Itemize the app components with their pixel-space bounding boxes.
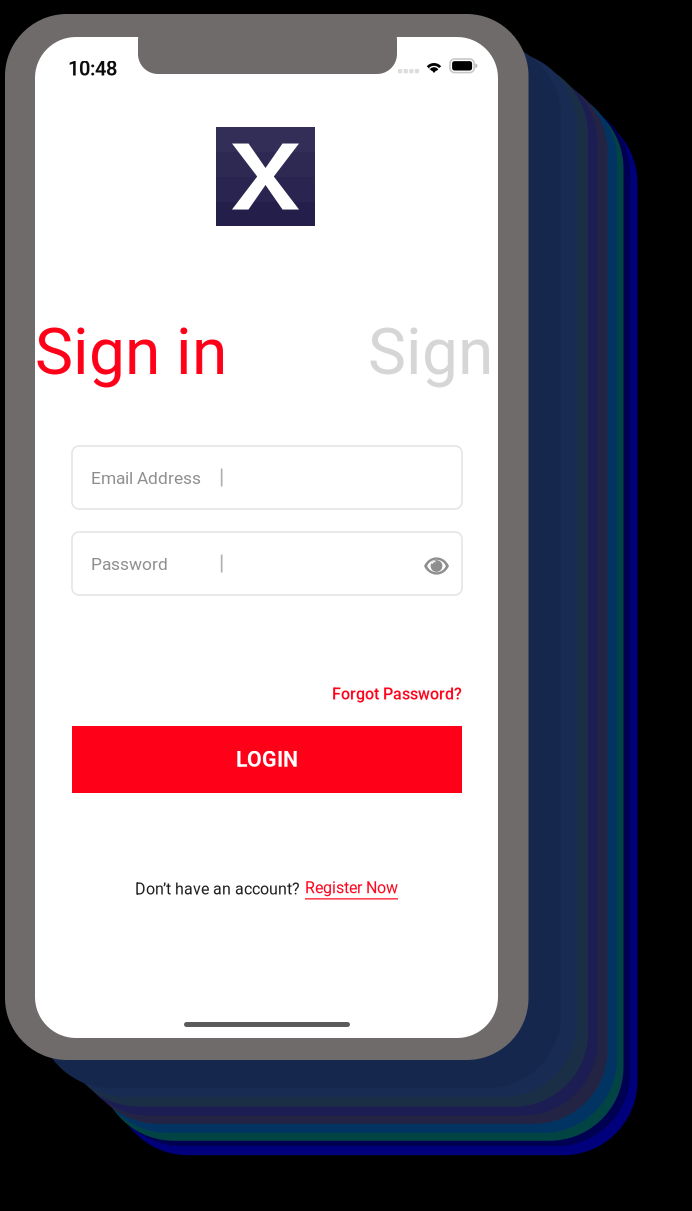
button[interactable]: LOGIN (72, 726, 462, 793)
staticText: Sign in (35, 314, 227, 389)
staticText: Register Now (305, 878, 398, 897)
button[interactable]: Forgot Password? (72, 680, 462, 708)
button[interactable]: Password (72, 532, 462, 595)
staticText: Password (91, 554, 168, 574)
staticText: Forgot Password? (332, 685, 462, 703)
staticText: Don’t have an account? (135, 880, 300, 898)
staticText: 10:48 (68, 57, 117, 80)
button[interactable]: Email Address (72, 446, 462, 509)
button[interactable]: Register Now (305, 878, 398, 899)
button[interactable]: Sign in (35, 309, 235, 395)
staticText: LOGIN (236, 747, 298, 772)
staticText: Email Address (91, 468, 201, 488)
staticText: Sign up (368, 314, 580, 389)
button[interactable]: Sign up (368, 309, 563, 395)
